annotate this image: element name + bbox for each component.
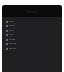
staticText: Wi-Fi [9,20,14,23]
button[interactable]: Sound [2,23,62,28]
staticText: Storage [9,42,16,45]
staticText: Apps [9,33,14,36]
button[interactable]: Storage [2,41,62,46]
staticText: Screen [9,38,15,41]
button[interactable]: Screen [2,37,62,42]
staticText: Settings [26,10,38,14]
staticText: Apps [9,29,14,32]
staticText: Sound [9,24,15,27]
staticText: Security [9,47,17,50]
button[interactable]: Security [2,46,62,51]
button[interactable]: Wi-Fi [2,19,62,24]
button[interactable]: Apps [2,28,62,33]
button[interactable]: Apps [2,32,62,37]
